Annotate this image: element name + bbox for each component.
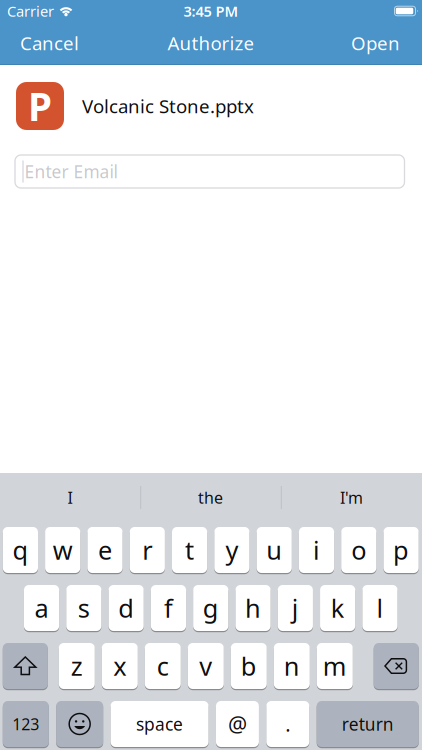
button[interactable] <box>374 643 419 689</box>
button[interactable]: a <box>24 585 59 631</box>
button[interactable]: h <box>235 585 271 631</box>
button[interactable]: x <box>102 643 138 689</box>
staticText: x <box>113 649 126 683</box>
staticText: g <box>203 591 219 625</box>
button[interactable]: Open <box>351 31 400 55</box>
button[interactable]: 123 <box>3 701 49 747</box>
staticText: Cancel <box>20 31 79 55</box>
button[interactable]: i <box>299 527 334 573</box>
button[interactable]: r <box>130 527 165 573</box>
button[interactable]: the <box>140 473 281 522</box>
button[interactable]: Enter Email <box>0 155 422 188</box>
staticText: t <box>185 533 194 567</box>
button[interactable]: v <box>188 643 224 689</box>
staticText: I <box>67 487 72 508</box>
staticText: k <box>331 591 345 625</box>
staticText: b <box>241 649 257 683</box>
button[interactable]: g <box>193 585 228 631</box>
button[interactable]: u <box>257 527 292 573</box>
staticText: u <box>266 533 282 567</box>
button[interactable]: I'm <box>281 473 422 522</box>
staticText: P <box>28 80 52 132</box>
staticText: the <box>198 487 223 508</box>
staticText: o <box>351 533 366 567</box>
button[interactable]: n <box>274 643 310 689</box>
button[interactable] <box>56 701 103 747</box>
button[interactable]: f <box>151 585 186 631</box>
button[interactable]: space <box>111 701 209 747</box>
button[interactable] <box>3 643 48 689</box>
staticText: n <box>284 649 300 683</box>
staticText: z <box>71 649 83 683</box>
button[interactable]: b <box>231 643 267 689</box>
staticText: h <box>245 591 261 625</box>
button[interactable]: l <box>362 585 398 631</box>
staticText: Carrier <box>7 1 54 21</box>
button[interactable]: t <box>172 527 207 573</box>
button[interactable]: z <box>59 643 95 689</box>
button[interactable]: return <box>317 701 419 747</box>
button[interactable]: k <box>320 585 355 631</box>
staticText: 3:45 PM <box>183 1 238 21</box>
staticText: Authorize <box>167 31 254 55</box>
staticText: Volcanic Stone.pptx <box>82 94 254 118</box>
staticText: s <box>78 591 90 625</box>
button[interactable]: y <box>214 527 249 573</box>
staticText: r <box>142 533 152 567</box>
staticText: a <box>35 591 49 625</box>
staticText: y <box>225 533 238 567</box>
button[interactable]: e <box>87 527 123 573</box>
staticText: 123 <box>12 713 39 735</box>
staticText: space <box>136 712 183 735</box>
staticText: m <box>323 649 347 683</box>
staticText: c <box>157 649 169 683</box>
button[interactable]: s <box>66 585 101 631</box>
button[interactable]: c <box>145 643 181 689</box>
button[interactable]: Cancel <box>20 31 79 55</box>
button[interactable]: q <box>3 527 38 573</box>
staticText: w <box>53 533 73 567</box>
staticText: Enter Email <box>24 160 117 183</box>
button[interactable]: p <box>383 527 419 573</box>
staticText: . <box>285 711 290 737</box>
staticText: Open <box>351 31 400 55</box>
button[interactable]: o <box>341 527 376 573</box>
staticText: i <box>313 533 320 567</box>
staticText: return <box>342 712 394 735</box>
staticText: p <box>393 533 409 567</box>
button[interactable]: . <box>266 701 309 747</box>
staticText: @ <box>228 710 247 738</box>
staticText: q <box>12 533 28 567</box>
staticText: l <box>376 591 383 625</box>
staticText: e <box>98 533 112 567</box>
button[interactable]: w <box>45 527 80 573</box>
staticText: f <box>164 591 173 625</box>
button[interactable]: I <box>0 473 140 522</box>
button[interactable]: @ <box>216 701 259 747</box>
button[interactable]: j <box>278 585 313 631</box>
staticText: j <box>292 591 299 625</box>
staticText: d <box>118 591 134 625</box>
staticText: v <box>199 649 212 683</box>
button[interactable]: d <box>109 585 144 631</box>
button[interactable]: m <box>317 643 353 689</box>
staticText: I'm <box>340 487 363 508</box>
